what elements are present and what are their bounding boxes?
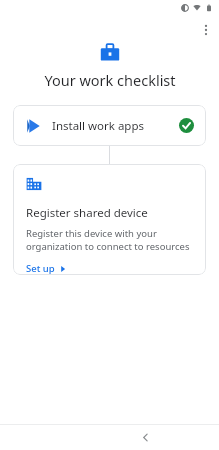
button[interactable]: Set up (26, 262, 66, 275)
button[interactable]: Back (36, 424, 219, 450)
button[interactable]: Install work apps (13, 105, 206, 146)
staticText: Set up (26, 262, 55, 275)
staticText: Register this device with your organizat… (26, 227, 193, 253)
staticText: Your work checklist (44, 70, 176, 90)
staticText: Install work apps (52, 118, 145, 134)
button[interactable]: More options (194, 18, 218, 42)
button[interactable]: Register shared device (13, 164, 206, 275)
staticText: Register shared device (26, 205, 148, 221)
